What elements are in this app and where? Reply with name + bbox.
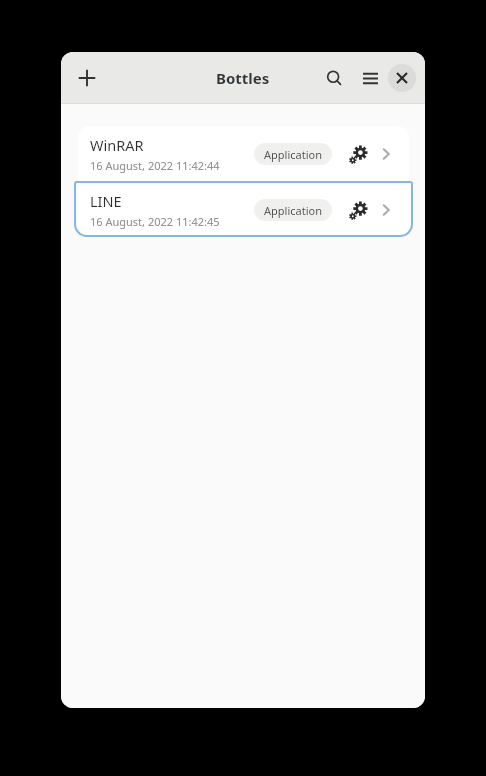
button[interactable]: Add bottle bbox=[69, 60, 105, 96]
staticText: Bottles bbox=[216, 68, 270, 88]
staticText: WinRAR bbox=[90, 135, 144, 155]
button[interactable]: Open bottle details bbox=[372, 140, 400, 168]
button[interactable]: LINE bbox=[78, 182, 409, 237]
button[interactable]: Close bbox=[388, 64, 416, 92]
button[interactable]: Bottle settings bbox=[344, 140, 372, 168]
staticText: 16 August, 2022 11:42:45 bbox=[90, 214, 220, 229]
button[interactable]: Main menu bbox=[352, 60, 388, 96]
staticText: Application bbox=[264, 203, 322, 218]
button[interactable]: Bottle settings bbox=[344, 196, 372, 224]
button[interactable]: Search bbox=[316, 60, 352, 96]
staticText: Application bbox=[264, 147, 322, 162]
staticText: 16 August, 2022 11:42:44 bbox=[90, 158, 220, 173]
button[interactable]: Open bottle details bbox=[372, 196, 400, 224]
staticText: LINE bbox=[90, 191, 122, 211]
button[interactable]: WinRAR bbox=[78, 126, 409, 181]
